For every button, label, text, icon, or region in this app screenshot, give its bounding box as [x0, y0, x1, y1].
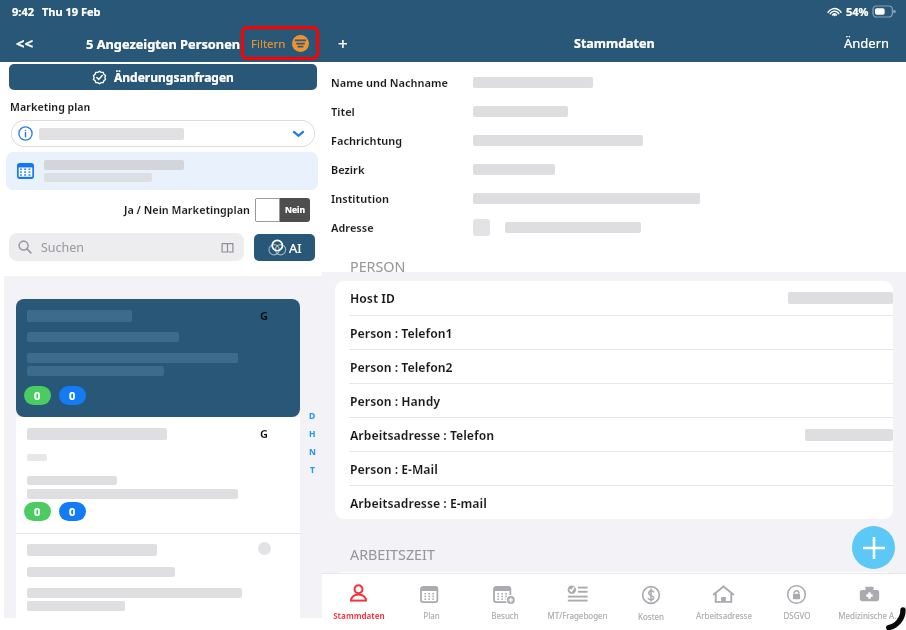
button[interactable]: 0	[16, 299, 300, 417]
staticText: DSGVO	[783, 610, 811, 621]
staticText: 9:42	[12, 4, 34, 19]
staticText: Person : Telefon1	[350, 325, 453, 341]
button[interactable]	[16, 533, 300, 618]
staticText: 0	[34, 504, 41, 519]
button[interactable]: 0	[16, 417, 300, 533]
button[interactable]: Person : Telefon1	[335, 316, 893, 349]
button[interactable]: Add new	[852, 526, 895, 569]
staticText: Stammdaten	[333, 610, 385, 621]
button[interactable]: Filtern	[244, 29, 316, 57]
staticText: Bezirk	[331, 162, 473, 177]
staticText: Titel	[331, 104, 473, 119]
staticText: 5 Angezeigten Personen	[86, 35, 241, 52]
staticText: 0	[69, 504, 76, 519]
staticText: Kosten	[638, 611, 664, 622]
staticText: Person : Telefon2	[350, 359, 453, 375]
button[interactable]: Änderungsanfragen	[9, 64, 317, 90]
staticText: AI	[289, 239, 302, 257]
staticText: T	[310, 464, 315, 476]
staticText: N	[309, 446, 316, 458]
staticText: Medizinische A...	[838, 610, 901, 621]
button[interactable]: Arbeitsadresse	[687, 574, 760, 630]
button[interactable]: Back	[10, 28, 40, 58]
button[interactable]	[6, 152, 318, 190]
staticText: Nein	[285, 204, 306, 216]
staticText: Person : E-Mail	[350, 461, 438, 477]
button[interactable]: Suchen	[9, 233, 244, 261]
staticText: Marketing plan	[10, 100, 91, 114]
staticText: G	[260, 426, 268, 441]
button[interactable]: Ändern	[844, 34, 890, 52]
staticText: Ja / Nein Marketingplan	[124, 203, 250, 217]
staticText: H	[309, 428, 316, 440]
button[interactable]: Arbeitsadresse : Telefon	[335, 418, 893, 451]
button[interactable]: Arbeitsadresse : E-mail	[335, 486, 893, 519]
staticText: Thu 19 Feb	[42, 4, 101, 19]
button[interactable]: DSGVO	[760, 574, 833, 630]
staticText: 54%	[846, 4, 869, 19]
staticText: <<	[16, 33, 34, 53]
staticText: Name und Nachname	[331, 75, 473, 90]
staticText: D	[309, 410, 316, 422]
staticText: Änderungsanfragen	[114, 69, 234, 85]
button[interactable]: MT/Fragebogen	[541, 574, 614, 630]
button[interactable]: Medizinische A...	[833, 574, 906, 630]
staticText: Fachrichtung	[331, 133, 473, 148]
button[interactable]: AI	[254, 234, 315, 261]
staticText: 0	[34, 388, 41, 403]
staticText: Arbeitsadresse	[696, 610, 752, 621]
button[interactable]: Besuch	[468, 574, 541, 630]
button[interactable]: Kosten	[614, 574, 687, 630]
staticText: Besuch	[491, 610, 519, 621]
button[interactable]: Add	[330, 30, 356, 56]
staticText: 0	[69, 388, 76, 403]
button[interactable]	[11, 120, 315, 147]
staticText: Host ID	[350, 290, 395, 306]
button[interactable]: Person : Telefon2	[335, 350, 893, 383]
staticText: PERSON	[350, 257, 406, 276]
staticText: Arbeitsadresse : Telefon	[350, 427, 495, 443]
staticText: Filtern	[251, 36, 286, 52]
staticText: Arbeitsadresse : E-mail	[350, 495, 487, 511]
button[interactable]: Nein	[255, 198, 310, 222]
button[interactable]: Host ID	[335, 281, 893, 315]
staticText: Ändern	[844, 34, 890, 52]
staticText: Stammdaten	[574, 35, 655, 52]
staticText: MT/Fragebogen	[547, 610, 608, 621]
button[interactable]: Person : Handy	[335, 384, 893, 417]
staticText: Plan	[423, 610, 440, 621]
staticText: +	[338, 32, 348, 55]
staticText: Institution	[331, 191, 473, 206]
button[interactable]: Stammdaten	[322, 574, 395, 630]
staticText: G	[260, 308, 268, 323]
button[interactable]: Person : E-Mail	[335, 452, 893, 485]
staticText: Suchen	[41, 239, 85, 256]
staticText: Person : Handy	[350, 393, 441, 409]
staticText: Adresse	[331, 220, 473, 235]
button[interactable]: Plan	[395, 574, 468, 630]
staticText: ARBEITSZEIT	[350, 545, 435, 564]
